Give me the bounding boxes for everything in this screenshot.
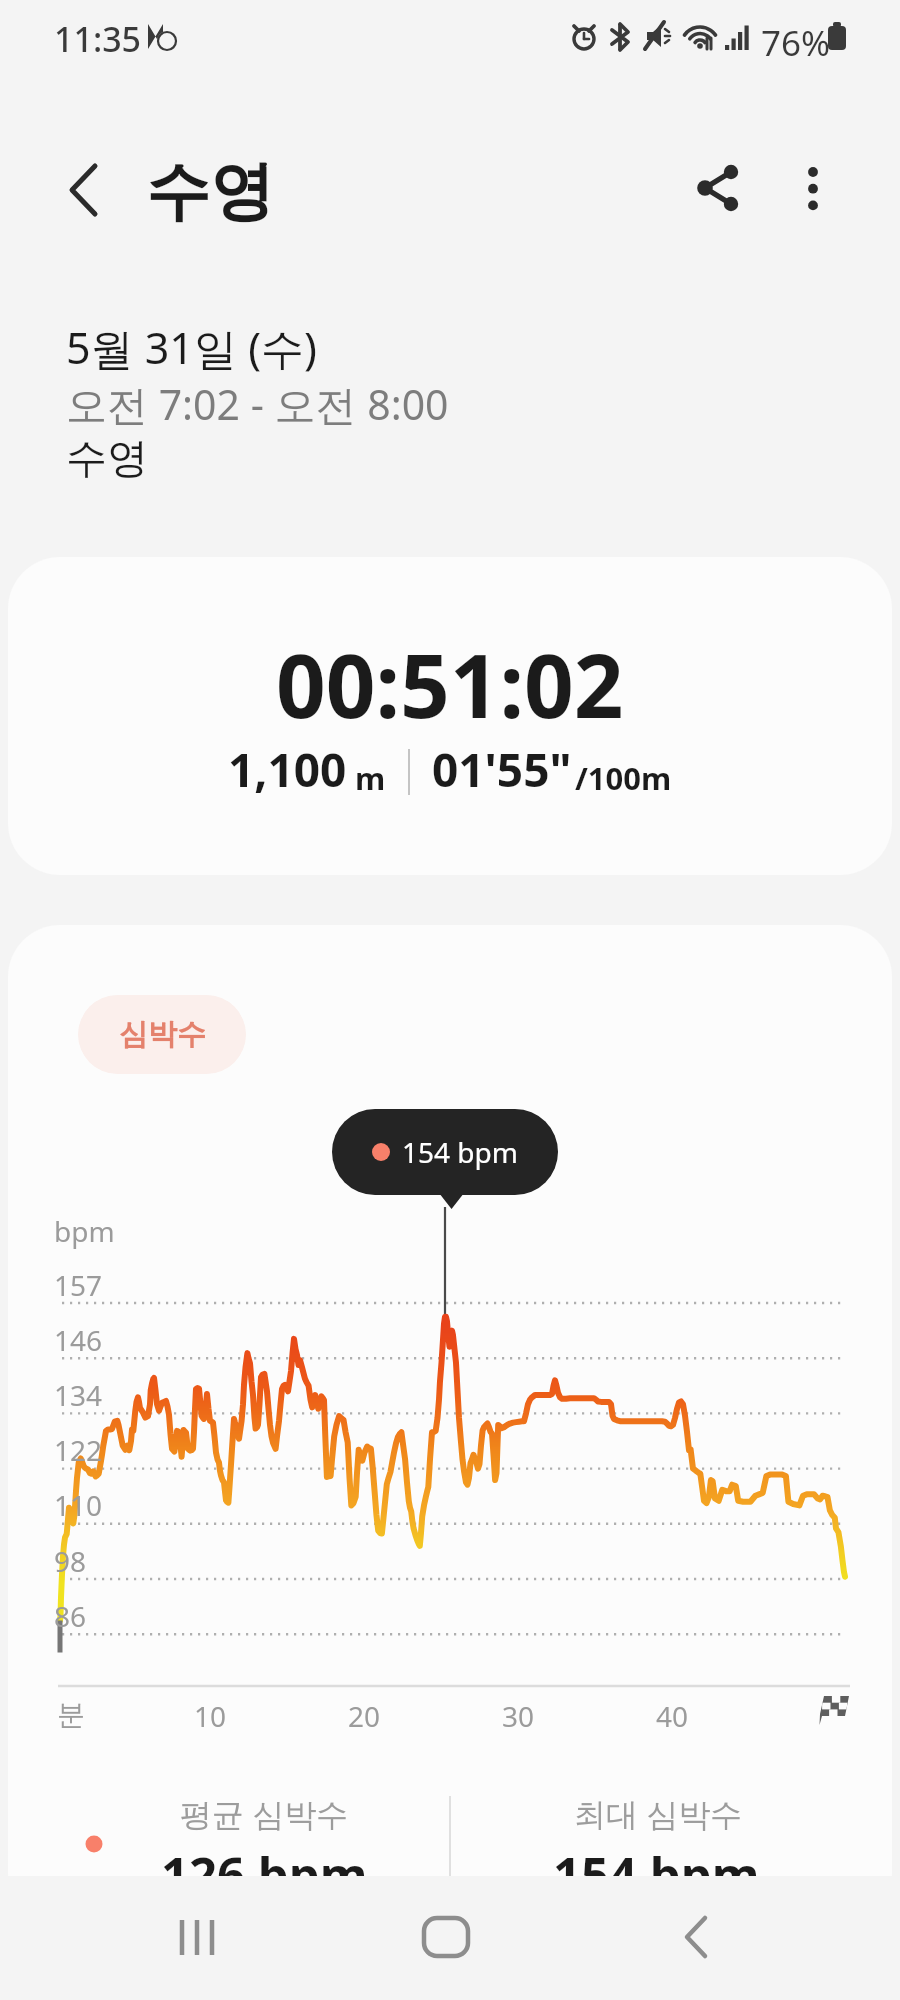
staticText: 86	[54, 1597, 87, 1635]
staticText: 154 bpm	[402, 1133, 518, 1171]
staticText: 154 bpm	[553, 1841, 760, 1908]
button[interactable]: 00:51:02	[8, 557, 892, 875]
staticText: 98	[54, 1542, 87, 1580]
staticText: 5월 31일 (수)	[66, 318, 317, 377]
staticText: 평균 심박수	[180, 1792, 349, 1836]
staticText: 122	[54, 1431, 103, 1469]
staticText: 오전 7:02 - 오전 8:00	[66, 376, 449, 432]
button[interactable]: Recents	[147, 1898, 247, 1978]
staticText: 40	[656, 1697, 689, 1735]
staticText: /100m	[575, 757, 672, 799]
button[interactable]: More options	[768, 145, 858, 235]
staticText: 30	[502, 1697, 535, 1735]
staticText: 1,100	[228, 738, 347, 801]
staticText: 110	[54, 1486, 103, 1524]
staticText: 수영	[66, 433, 148, 485]
staticText: 00:51:02	[276, 625, 624, 743]
button[interactable]: 심박수	[78, 995, 246, 1074]
button[interactable]: Share	[672, 145, 762, 235]
staticText: 146	[54, 1321, 103, 1359]
staticText: bpm	[54, 1212, 115, 1250]
staticText: 76%	[761, 19, 831, 67]
staticText: m	[355, 757, 386, 799]
staticText: 20	[348, 1697, 381, 1735]
staticText: 11:35	[54, 16, 142, 62]
staticText: 126 bpm	[161, 1841, 368, 1908]
staticText: 수영	[146, 151, 274, 232]
button[interactable]: 154 bpm	[332, 1109, 558, 1195]
button[interactable]: Home	[396, 1898, 496, 1978]
staticText: 심박수	[119, 1016, 206, 1053]
staticText: 134	[54, 1376, 103, 1414]
staticText: 최대 심박수	[574, 1792, 743, 1836]
staticText: 10	[194, 1697, 227, 1735]
button[interactable]: Back	[42, 145, 132, 235]
button[interactable]: Back	[648, 1898, 748, 1978]
staticText: 01'55"	[432, 738, 572, 801]
staticText: 분	[57, 1697, 85, 1732]
staticText: 157	[54, 1266, 103, 1304]
